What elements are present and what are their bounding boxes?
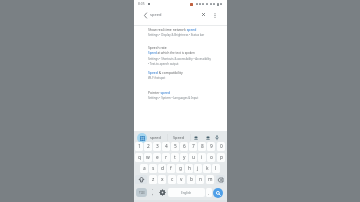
button[interactable]: k bbox=[203, 164, 211, 173]
button[interactable]: Speed & compatibility bbox=[148, 70, 183, 75]
button[interactable] bbox=[137, 133, 147, 143]
button[interactable]: English bbox=[168, 188, 205, 197]
button[interactable] bbox=[216, 175, 225, 184]
button[interactable]: z bbox=[149, 175, 157, 184]
button[interactable]: o bbox=[207, 153, 215, 162]
button[interactable]: speed bbox=[150, 135, 161, 140]
staticText: Speed at which the text is spoken bbox=[148, 51, 195, 55]
staticText: 6 bbox=[183, 143, 186, 150]
staticText: c bbox=[171, 176, 174, 183]
staticText: a bbox=[143, 165, 146, 172]
button[interactable]: g bbox=[176, 164, 184, 173]
button[interactable]: d bbox=[158, 164, 166, 173]
staticText: p bbox=[220, 154, 223, 161]
staticText: b bbox=[190, 176, 193, 183]
button[interactable]: 1 bbox=[135, 142, 143, 151]
button[interactable] bbox=[194, 136, 198, 140]
staticText: h bbox=[188, 165, 191, 172]
button[interactable]: e bbox=[153, 153, 161, 162]
staticText: n bbox=[199, 176, 202, 183]
button[interactable]: y bbox=[180, 153, 188, 162]
button[interactable] bbox=[215, 135, 219, 140]
button[interactable]: c bbox=[168, 175, 176, 184]
staticText: , bbox=[152, 190, 154, 196]
button[interactable]: Pointer speed bbox=[148, 90, 171, 95]
button[interactable]: 0 bbox=[217, 142, 225, 151]
button[interactable]: x bbox=[158, 175, 166, 184]
staticText: 5 bbox=[174, 143, 177, 150]
button[interactable]: Show real-time network speed bbox=[148, 27, 197, 32]
button[interactable]: 9 bbox=[207, 142, 215, 151]
staticText: Settings • Shortcuts & accessibility • A… bbox=[148, 57, 212, 61]
button[interactable]: u bbox=[189, 153, 197, 162]
button[interactable]: Speech rate bbox=[148, 45, 167, 50]
staticText: 8 bbox=[201, 143, 204, 150]
button[interactable]: v bbox=[177, 175, 185, 184]
button[interactable]: 2 bbox=[144, 142, 152, 151]
button[interactable]: l bbox=[212, 164, 220, 173]
button[interactable]: s bbox=[149, 164, 157, 173]
button[interactable]: i bbox=[198, 153, 206, 162]
staticText: l bbox=[215, 165, 217, 172]
button[interactable] bbox=[202, 13, 205, 16]
button[interactable]: p bbox=[217, 153, 225, 162]
button[interactable]: 3 bbox=[153, 142, 161, 151]
staticText: f bbox=[170, 165, 172, 172]
button[interactable] bbox=[213, 188, 223, 198]
staticText: ? bbox=[152, 187, 154, 190]
staticText: 0 bbox=[220, 143, 223, 150]
staticText: Speed bbox=[173, 135, 185, 140]
button[interactable]: . bbox=[206, 188, 212, 197]
staticText: Wi-Fi hotspot bbox=[148, 76, 166, 80]
staticText: s bbox=[152, 165, 155, 172]
button[interactable]: r bbox=[162, 153, 170, 162]
staticText: y bbox=[183, 154, 186, 161]
staticText: g bbox=[179, 165, 182, 172]
staticText: x bbox=[161, 176, 164, 183]
staticText: . bbox=[208, 190, 210, 196]
button[interactable]: ?123 bbox=[136, 188, 147, 197]
button[interactable] bbox=[159, 189, 166, 196]
staticText: ?123 bbox=[139, 191, 145, 195]
button[interactable]: a bbox=[140, 164, 148, 173]
button[interactable]: 5 bbox=[171, 142, 179, 151]
staticText: Settings • Display & Brightness • Status… bbox=[148, 33, 205, 37]
button[interactable]: 4 bbox=[162, 142, 170, 151]
staticText: d bbox=[161, 165, 164, 172]
button[interactable]: f bbox=[167, 164, 175, 173]
button[interactable] bbox=[214, 13, 216, 18]
button[interactable] bbox=[135, 175, 147, 184]
staticText: m bbox=[208, 176, 213, 183]
button[interactable]: , bbox=[149, 188, 157, 197]
button[interactable]: j bbox=[194, 164, 202, 173]
button[interactable]: m bbox=[206, 175, 214, 184]
button[interactable] bbox=[206, 136, 210, 140]
staticText: u bbox=[192, 154, 195, 161]
button[interactable]: q bbox=[135, 153, 143, 162]
staticText: speed bbox=[150, 135, 161, 140]
button[interactable]: h bbox=[185, 164, 193, 173]
staticText: 9 bbox=[210, 143, 213, 150]
button[interactable]: 7 bbox=[189, 142, 197, 151]
button[interactable]: t bbox=[171, 153, 179, 162]
staticText: z bbox=[152, 176, 155, 183]
staticText: v bbox=[180, 176, 183, 183]
staticText: t bbox=[174, 154, 176, 161]
button[interactable] bbox=[144, 13, 147, 18]
staticText: k bbox=[206, 165, 209, 172]
staticText: • Text-to-speech output bbox=[148, 62, 179, 66]
button[interactable]: 8 bbox=[198, 142, 206, 151]
button[interactable]: Speed bbox=[173, 135, 185, 140]
button[interactable]: 6 bbox=[180, 142, 188, 151]
staticText: Speed & compatibility bbox=[148, 70, 183, 75]
staticText: English bbox=[181, 191, 192, 195]
staticText: speed bbox=[150, 12, 162, 17]
staticText: 2 bbox=[147, 143, 150, 150]
staticText: 3 bbox=[156, 143, 159, 150]
button[interactable]: w bbox=[144, 153, 152, 162]
button[interactable]: n bbox=[196, 175, 204, 184]
button[interactable]: b bbox=[187, 175, 195, 184]
staticText: e bbox=[156, 154, 159, 161]
staticText: i bbox=[201, 154, 203, 161]
staticText: q bbox=[138, 154, 141, 161]
